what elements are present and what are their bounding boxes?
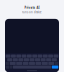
- staticText: runs on device: [22, 10, 42, 14]
- staticText: Private AI: [24, 6, 39, 9]
